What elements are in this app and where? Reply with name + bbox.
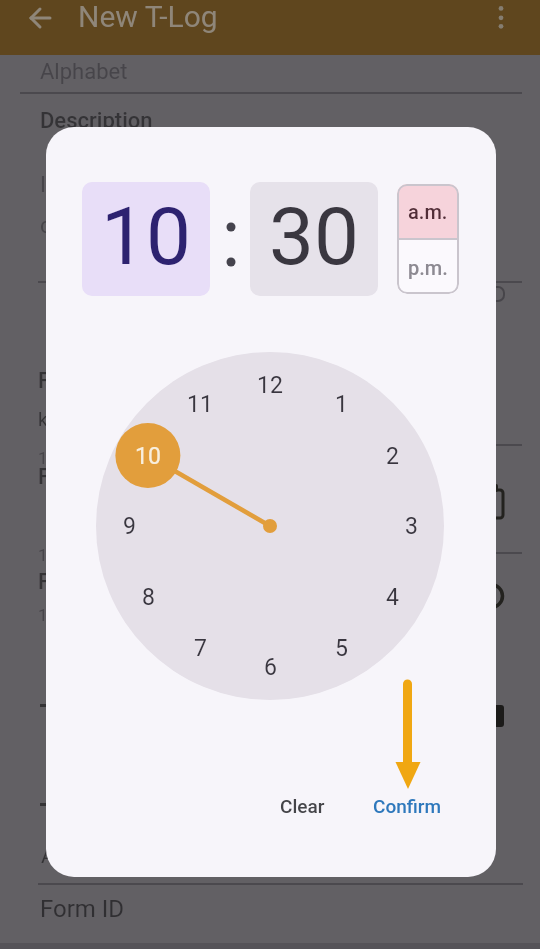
- staticText: 9: [123, 513, 136, 540]
- staticText: Confirm: [373, 795, 442, 817]
- staticText: a.m.: [408, 200, 448, 223]
- staticText: F: [38, 368, 51, 394]
- staticText: 8: [142, 584, 155, 611]
- button[interactable]: p.m.: [397, 240, 459, 294]
- staticText: 11: [187, 391, 213, 418]
- staticText: 3: [405, 513, 418, 540]
- button[interactable]: [493, 2, 509, 34]
- staticText: Description: [40, 108, 153, 134]
- staticText: 2: [386, 443, 399, 470]
- staticText: p.m.: [408, 256, 448, 279]
- staticText: 10: [101, 190, 191, 284]
- staticText: Clear: [280, 795, 325, 817]
- staticText: k: [38, 408, 48, 430]
- button[interactable]: Confirm: [359, 785, 455, 827]
- staticText: Alphabet: [40, 59, 128, 85]
- staticText: F: [38, 464, 51, 490]
- staticText: 1: [38, 448, 48, 468]
- button[interactable]: 10: [82, 182, 210, 296]
- staticText: 30: [269, 190, 359, 284]
- button[interactable]: a.m.: [397, 184, 459, 238]
- staticText: c: [40, 213, 52, 239]
- staticText: 5: [335, 635, 348, 662]
- staticText: F: [38, 569, 51, 595]
- staticText: 7: [194, 635, 207, 662]
- staticText: Form ID: [40, 895, 125, 923]
- staticText: 1: [335, 391, 348, 418]
- staticText: 1: [38, 545, 48, 565]
- staticText: 4: [386, 584, 399, 611]
- staticText: I: [40, 172, 46, 198]
- staticText: 6: [264, 654, 277, 681]
- button[interactable]: Clear: [254, 785, 350, 827]
- staticText: 1: [38, 605, 48, 625]
- staticText: 12: [257, 372, 283, 399]
- staticText: New T-Log: [78, 0, 218, 34]
- staticText: A: [41, 844, 55, 869]
- button[interactable]: [26, 4, 54, 32]
- staticText: 10: [135, 443, 161, 470]
- button[interactable]: 30: [250, 182, 378, 296]
